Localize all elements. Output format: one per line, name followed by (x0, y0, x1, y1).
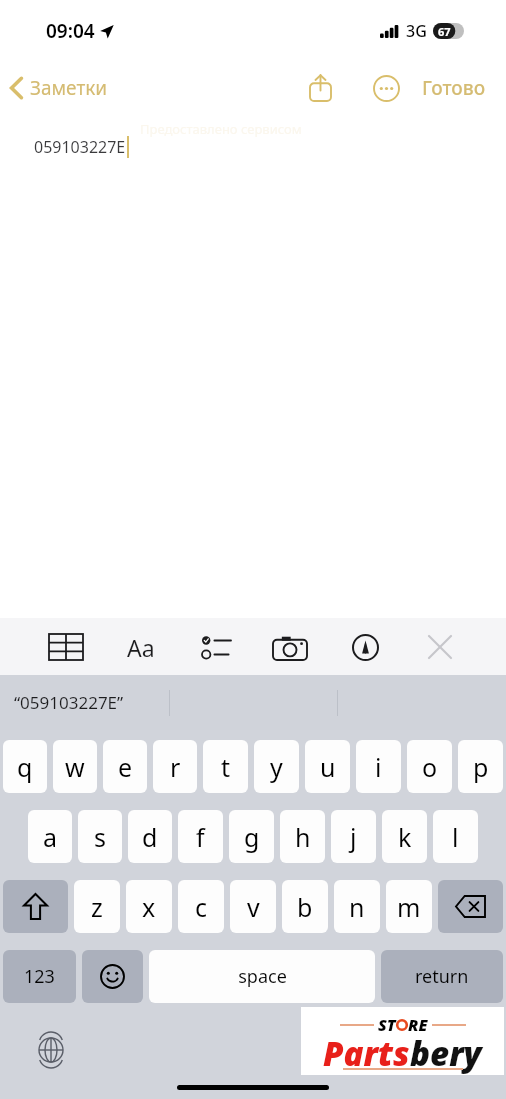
staticText: h (295, 820, 311, 854)
button[interactable]: b (282, 880, 328, 933)
button[interactable]: return (381, 950, 503, 1003)
staticText: j (350, 820, 357, 854)
staticText: k (398, 820, 412, 854)
button[interactable]: c (178, 880, 224, 933)
button[interactable]: Table (44, 625, 88, 669)
staticText: Parts (323, 1031, 410, 1076)
staticText: Заметки (30, 75, 108, 101)
staticText: “059103227E” (14, 691, 124, 714)
staticText: Aa (127, 632, 155, 663)
staticText: e (118, 750, 133, 784)
staticText: g (244, 820, 260, 854)
button[interactable]: e (103, 740, 147, 793)
button[interactable]: Emoji (82, 950, 143, 1003)
staticText: w (65, 750, 85, 784)
button[interactable]: Заметки (0, 69, 116, 107)
button[interactable]: i (356, 740, 401, 793)
button[interactable]: space (149, 950, 375, 1003)
staticText: RE (408, 1014, 428, 1036)
staticText: a (43, 820, 58, 854)
button[interactable]: Delete (438, 880, 503, 933)
button[interactable]: l (433, 810, 478, 863)
staticText: 3G (406, 20, 427, 42)
button[interactable]: d (128, 810, 172, 863)
staticText: 059103227E (34, 136, 126, 158)
staticText: i (375, 750, 382, 784)
button[interactable]: Share (298, 66, 342, 110)
button[interactable]: g (229, 810, 274, 863)
staticText: bery (410, 1031, 482, 1076)
staticText: b (297, 890, 313, 924)
staticText: Готово (422, 75, 486, 101)
button[interactable]: w (53, 740, 97, 793)
staticText: x (142, 890, 156, 924)
staticText: u (320, 750, 336, 784)
button[interactable]: k (382, 810, 427, 863)
staticText: o (422, 750, 438, 784)
button[interactable]: Switch keyboard language (28, 1027, 74, 1073)
staticText: return (415, 964, 469, 989)
staticText: 123 (24, 964, 55, 989)
button[interactable]: Готово (418, 67, 490, 109)
button[interactable]: Camera (268, 625, 312, 669)
staticText: ST (378, 1014, 396, 1036)
button[interactable]: Checklist (194, 625, 238, 669)
staticText: space (238, 964, 287, 989)
button[interactable]: More options (366, 68, 406, 108)
button[interactable]: Shift (3, 880, 68, 933)
button[interactable]: p (458, 740, 503, 793)
button[interactable]: j (331, 810, 376, 863)
button[interactable]: f (178, 810, 223, 863)
staticText: l (452, 820, 459, 854)
button[interactable]: Markup (343, 625, 387, 669)
staticText: n (349, 890, 365, 924)
button[interactable]: t (203, 740, 248, 793)
button[interactable]: u (305, 740, 350, 793)
button[interactable]: o (407, 740, 452, 793)
button[interactable]: q (3, 740, 47, 793)
staticText: t (221, 750, 231, 784)
staticText: s (94, 820, 106, 854)
staticText: v (247, 890, 260, 924)
staticText: Предоставлено сервисом (140, 120, 302, 138)
button[interactable]: r (153, 740, 197, 793)
button[interactable]: 123 (3, 950, 76, 1003)
button[interactable]: n (334, 880, 380, 933)
staticText: z (91, 890, 103, 924)
staticText: y (270, 750, 283, 784)
staticText: d (142, 820, 158, 854)
button[interactable]: Close keyboard (418, 625, 462, 669)
staticText: q (17, 750, 33, 784)
button[interactable]: “059103227E” (0, 685, 138, 720)
staticText: p (473, 750, 489, 784)
button[interactable]: m (386, 880, 432, 933)
button[interactable]: s (78, 810, 122, 863)
button[interactable]: h (280, 810, 325, 863)
staticText: r (170, 750, 181, 784)
staticText: 09:04 (46, 18, 95, 44)
staticText: 67 (438, 24, 451, 39)
button[interactable]: y (254, 740, 299, 793)
staticText: m (397, 890, 421, 924)
button[interactable]: a (28, 810, 72, 863)
button[interactable]: v (230, 880, 276, 933)
button[interactable]: x (126, 880, 172, 933)
staticText: f (196, 820, 205, 854)
button[interactable]: z (74, 880, 120, 933)
staticText: c (195, 890, 208, 924)
button[interactable]: Text format (119, 625, 163, 669)
